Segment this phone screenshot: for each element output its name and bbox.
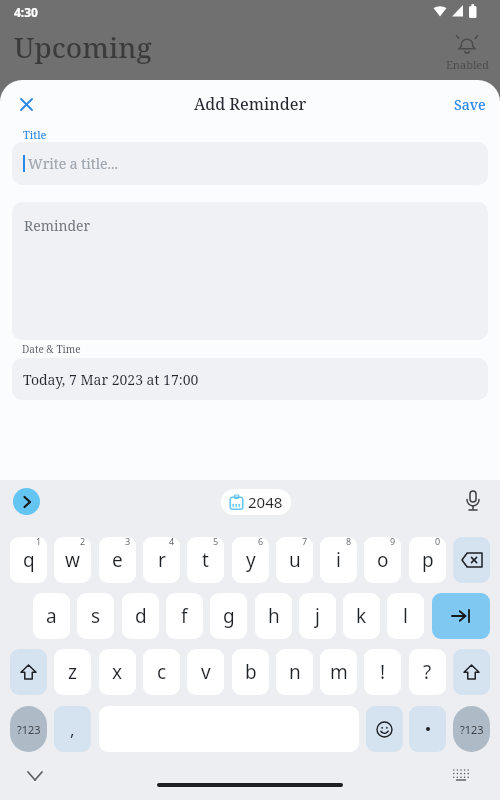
- staticText: m: [330, 659, 348, 685]
- button[interactable]: Enabled: [441, 33, 493, 72]
- button[interactable]: f: [166, 593, 203, 639]
- button[interactable]: ?123: [10, 706, 47, 752]
- staticText: h: [268, 603, 280, 629]
- staticText: Upcoming: [14, 28, 152, 66]
- button[interactable]: d: [122, 593, 159, 639]
- button[interactable]: [461, 490, 485, 514]
- staticText: x: [112, 659, 123, 685]
- staticText: 7: [302, 537, 308, 547]
- staticText: l: [403, 603, 408, 629]
- staticText: 9: [390, 537, 396, 547]
- staticText: Date & Time: [22, 342, 81, 356]
- button[interactable]: j: [299, 593, 336, 639]
- button[interactable]: x: [99, 649, 136, 695]
- button[interactable]: [10, 649, 47, 695]
- staticText: e: [112, 547, 123, 573]
- staticText: 4: [169, 537, 175, 547]
- button[interactable]: [448, 764, 474, 784]
- staticText: g: [223, 603, 235, 629]
- staticText: Save: [454, 95, 486, 114]
- staticText: 5: [213, 537, 219, 547]
- staticText: b: [245, 659, 257, 685]
- staticText: 4:30: [14, 4, 38, 20]
- button[interactable]: l: [387, 593, 424, 639]
- staticText: d: [135, 603, 147, 629]
- button[interactable]: 2048: [221, 489, 291, 515]
- staticText: z: [68, 659, 77, 685]
- button[interactable]: e: [99, 537, 136, 583]
- staticText: 3: [125, 537, 131, 547]
- staticText: n: [289, 659, 301, 685]
- staticText: c: [157, 659, 167, 685]
- staticText: y: [246, 547, 256, 573]
- staticText: r: [158, 547, 166, 573]
- staticText: Enabled: [446, 57, 489, 72]
- button[interactable]: a: [33, 593, 70, 639]
- button[interactable]: [366, 706, 403, 752]
- button[interactable]: [432, 593, 490, 639]
- staticText: f: [181, 603, 188, 629]
- staticText: ?123: [17, 722, 41, 737]
- staticText: 1: [36, 537, 42, 547]
- staticText: q: [23, 547, 35, 573]
- staticText: ?: [423, 659, 432, 685]
- button[interactable]: Reminder: [12, 202, 488, 340]
- staticText: Title: [23, 127, 47, 142]
- button[interactable]: v: [187, 649, 224, 695]
- staticText: 2048: [248, 492, 283, 512]
- staticText: Reminder: [24, 216, 91, 235]
- staticText: !: [380, 659, 386, 685]
- button[interactable]: q: [10, 537, 47, 583]
- button[interactable]: s: [77, 593, 114, 639]
- button[interactable]: u: [276, 537, 313, 583]
- staticText: v: [201, 659, 211, 685]
- staticText: 0: [435, 537, 441, 547]
- staticText: j: [315, 603, 320, 629]
- staticText: a: [46, 603, 57, 629]
- button[interactable]: c: [143, 649, 180, 695]
- button[interactable]: k: [343, 593, 380, 639]
- staticText: ?123: [460, 722, 484, 737]
- button[interactable]: Save: [454, 95, 486, 114]
- button[interactable]: z: [54, 649, 91, 695]
- button[interactable]: n: [276, 649, 313, 695]
- button[interactable]: [12, 90, 40, 118]
- button[interactable]: [409, 706, 446, 752]
- staticText: 2: [80, 537, 86, 547]
- staticText: s: [91, 603, 101, 629]
- staticText: Add Reminder: [194, 93, 307, 115]
- button[interactable]: p: [409, 537, 446, 583]
- button[interactable]: [453, 537, 490, 583]
- button[interactable]: Today, 7 Mar 2023 at 17:00: [12, 358, 488, 400]
- staticText: w: [65, 547, 80, 573]
- button[interactable]: o: [364, 537, 401, 583]
- button[interactable]: ,: [54, 706, 91, 752]
- staticText: u: [289, 547, 301, 573]
- staticText: 8: [346, 537, 352, 547]
- staticText: 6: [258, 537, 264, 547]
- button[interactable]: w: [54, 537, 91, 583]
- button[interactable]: [22, 766, 48, 786]
- staticText: Write a title...: [28, 154, 118, 173]
- button[interactable]: b: [232, 649, 269, 695]
- button[interactable]: i: [320, 537, 357, 583]
- button[interactable]: t: [187, 537, 224, 583]
- button[interactable]: m: [320, 649, 357, 695]
- button[interactable]: h: [255, 593, 292, 639]
- staticText: Today, 7 Mar 2023 at 17:00: [23, 370, 199, 389]
- button[interactable]: [453, 649, 490, 695]
- button[interactable]: ?: [409, 649, 446, 695]
- button[interactable]: g: [210, 593, 247, 639]
- staticText: p: [422, 547, 434, 573]
- staticText: ,: [70, 718, 75, 741]
- button[interactable]: Write a title...: [12, 142, 488, 185]
- staticText: k: [356, 603, 367, 629]
- button[interactable]: ?123: [453, 706, 490, 752]
- button[interactable]: !: [364, 649, 401, 695]
- staticText: t: [202, 547, 209, 573]
- staticText: i: [336, 547, 341, 573]
- button[interactable]: [13, 488, 40, 515]
- button[interactable]: y: [232, 537, 269, 583]
- button[interactable]: r: [143, 537, 180, 583]
